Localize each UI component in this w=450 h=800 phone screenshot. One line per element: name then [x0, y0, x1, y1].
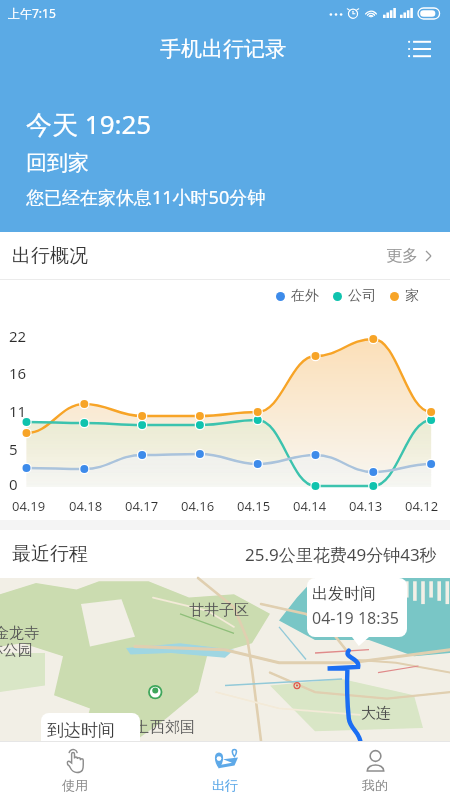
staticText: 今天 19:25 [26, 106, 152, 142]
staticText: 04-19 18:35 [312, 607, 399, 629]
staticText: 上午7:15 [8, 5, 56, 21]
button[interactable]: Menu [397, 27, 441, 71]
staticText: 04.19 [12, 497, 46, 515]
staticText: 04.17 [125, 497, 159, 515]
staticText: 大连 [361, 704, 391, 723]
staticText: 11 [9, 401, 27, 421]
staticText: 04.12 [405, 497, 439, 515]
staticText: 04.16 [181, 497, 215, 515]
staticText: 25.9公里花费49分钟43秒 [245, 543, 437, 566]
staticText: 出行 [212, 777, 238, 793]
staticText: 04.13 [349, 497, 383, 515]
staticText: 22 [9, 326, 27, 346]
staticText: 最近行程 [12, 542, 88, 566]
staticText: 土 [134, 718, 149, 737]
button[interactable]: 出行 [150, 742, 300, 800]
staticText: 出行概况 [12, 244, 88, 268]
button[interactable]: 使用 [0, 742, 150, 800]
staticText: 到达时间 [47, 720, 115, 741]
staticText: 西郊国 [150, 718, 195, 737]
staticText: 金龙寺 [0, 624, 39, 643]
staticText: 04.14 [293, 497, 327, 515]
staticText: 您已经在家休息11小时50分钟 [26, 185, 266, 210]
staticText: 04.15 [237, 497, 271, 515]
staticText: 林公园 [0, 641, 33, 660]
staticText: 手机出行记录 [160, 36, 286, 62]
staticText: 5 [9, 439, 18, 459]
staticText: 04.18 [69, 497, 103, 515]
staticText: 在外 [291, 287, 319, 305]
staticText: 我的 [362, 777, 388, 793]
staticText: 出发时间 [312, 584, 376, 604]
staticText: 公司 [348, 287, 376, 305]
staticText: 使用 [62, 777, 88, 793]
staticText: 回到家 [26, 150, 89, 176]
staticText: 更多 [386, 246, 418, 266]
staticText: 甘井子区 [189, 601, 249, 620]
button[interactable]: 最近行程 [0, 530, 450, 578]
staticText: 0 [9, 474, 18, 494]
button[interactable]: 我的 [300, 742, 450, 800]
staticText: 家 [405, 287, 419, 305]
staticText: 16 [9, 363, 27, 383]
button[interactable]: 出行概况 [0, 232, 450, 280]
